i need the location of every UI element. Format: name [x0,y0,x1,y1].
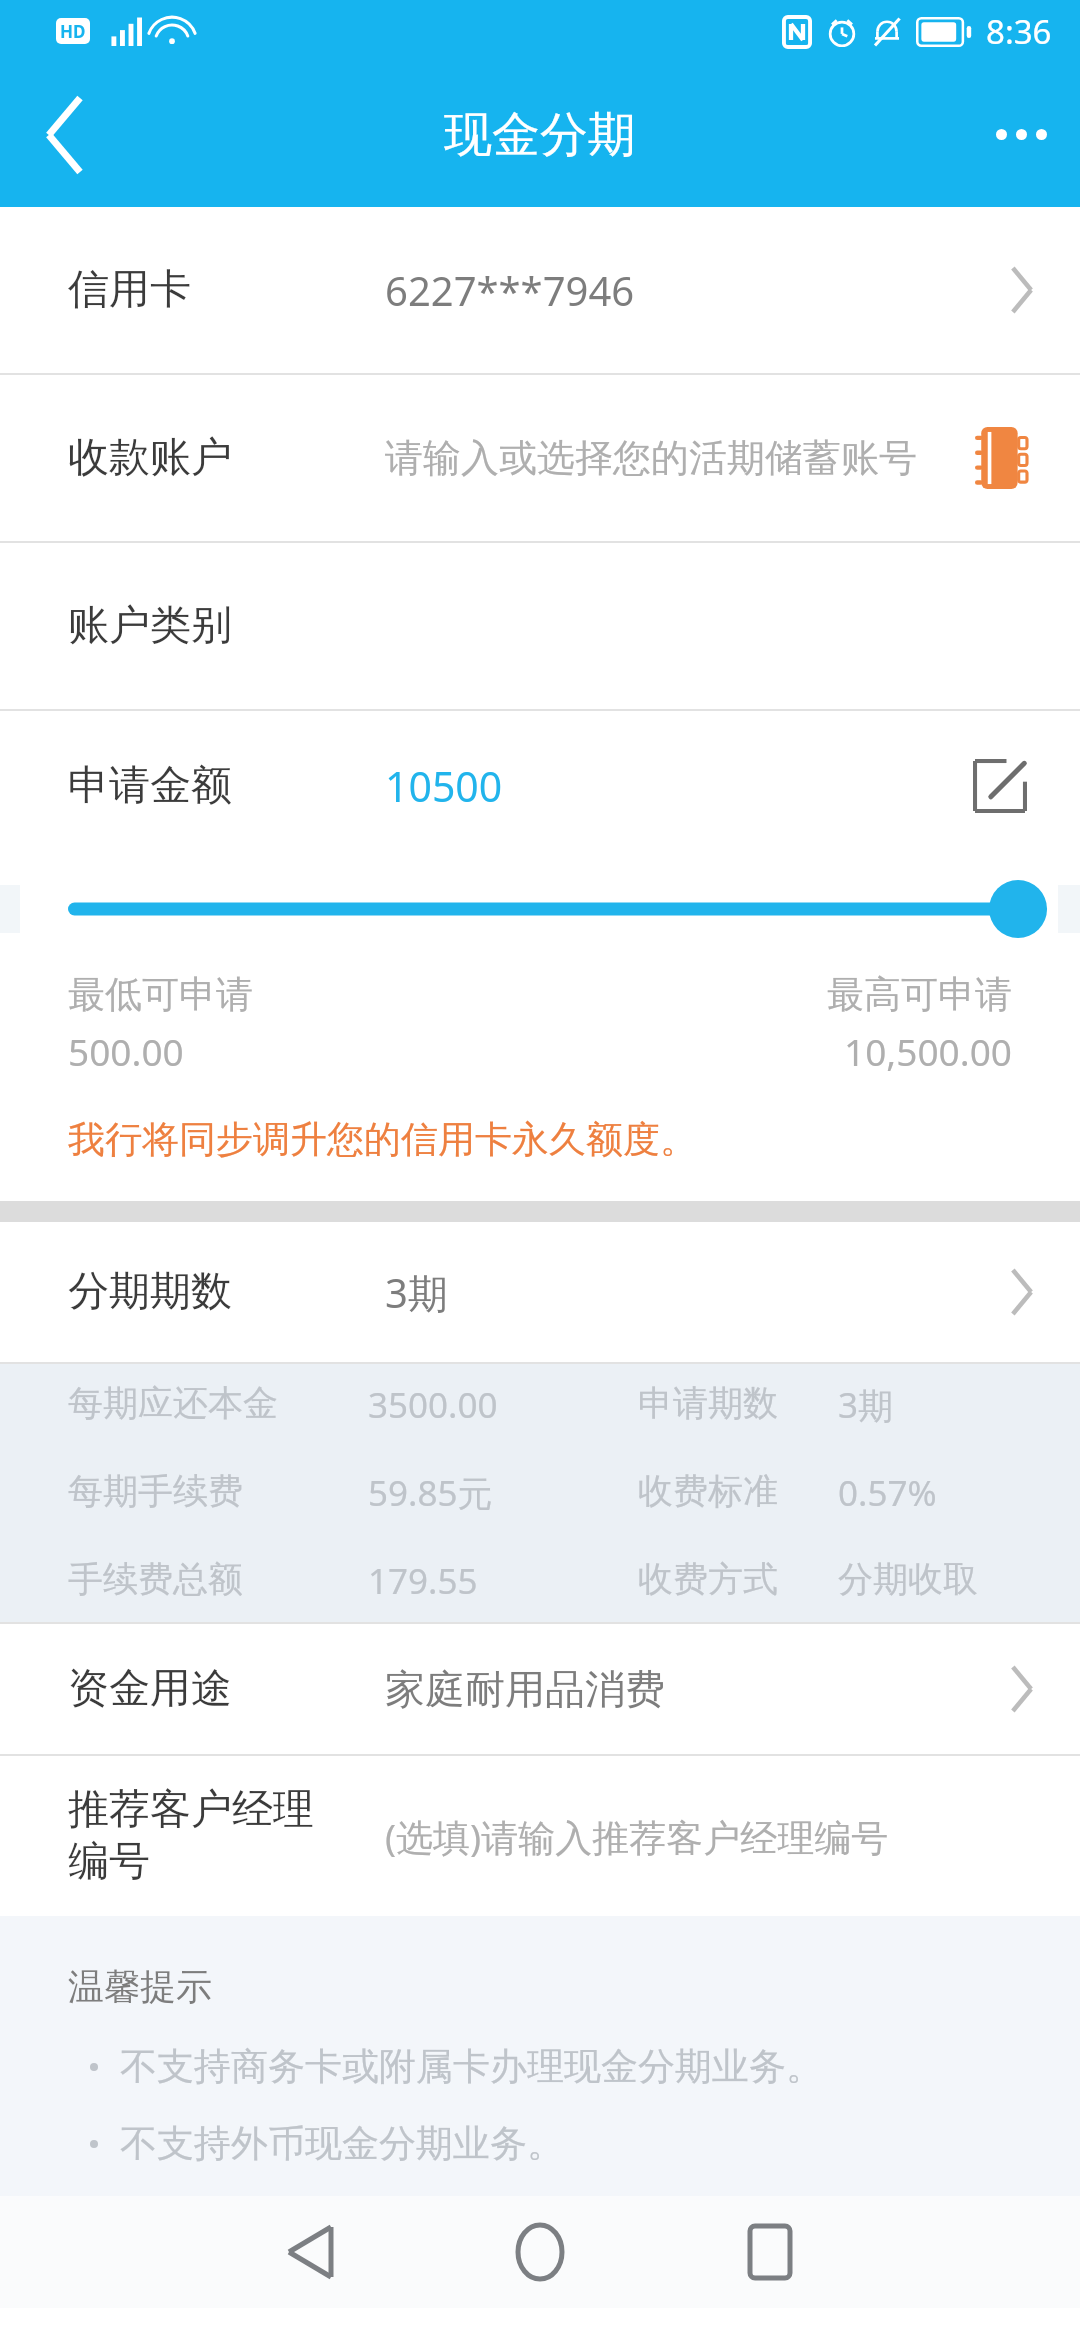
staticText: (选填)请输入推荐客户经理编号 [385,1811,889,1862]
staticText: 家庭耐用品消费 [385,1664,665,1714]
staticText: 申请期数 [638,1381,778,1425]
staticText: 推荐客户经理 [68,1784,314,1836]
staticText: 0.57% [838,1469,937,1517]
staticText: 最高可申请 [827,971,1012,1018]
button[interactable]: Edit amount [962,748,1038,824]
staticText: 信用卡 [68,264,191,316]
staticText: 现金分期 [444,105,636,165]
staticText: 我行将同步调升您的信用卡永久额度。 [68,1116,697,1163]
staticText: 每期手续费 [68,1469,243,1513]
staticText: 10,500.00 [844,1026,1012,1076]
staticText: 请输入或选择您的活期储蓄账号 [385,434,917,482]
staticText: 分期期数 [68,1266,232,1318]
staticText: 分期收取 [838,1557,978,1601]
button[interactable]: 信用卡 [0,207,1080,373]
staticText: 不支持外币现金分期业务。 [120,2120,564,2167]
staticText: 3期 [838,1381,894,1429]
staticText: 账户类别 [68,600,232,652]
staticText: HD [60,20,86,43]
button[interactable]: 推荐客户经理 [0,1756,1080,1916]
staticText: 温馨提示 [68,1964,212,2009]
staticText: 3期 [385,1265,448,1320]
button[interactable]: Back [250,2196,370,2308]
staticText: 6227***7946 [385,263,635,317]
button[interactable]: Home [480,2196,600,2308]
button[interactable]: 资金用途 [0,1624,1080,1754]
staticText: 最低可申请 [68,971,253,1018]
staticText: 资金用途 [68,1663,232,1715]
staticText: 收费标准 [638,1469,778,1513]
staticText: 179.55 [368,1557,478,1605]
staticText: 每期应还本金 [68,1381,278,1425]
button[interactable]: 分期期数 [0,1222,1080,1362]
staticText: 申请金额 [68,760,232,812]
staticText: 收款账户 [68,432,232,484]
staticText: 3500.00 [368,1381,498,1429]
button[interactable]: Recent apps [710,2196,830,2308]
button[interactable]: Amount slider [68,861,1034,957]
button[interactable]: 账户类别 [0,543,1080,709]
staticText: 8:36 [986,9,1052,54]
staticText: 不支持商务卡或附属卡办理现金分期业务。 [120,2043,823,2090]
staticText: 59.85元 [368,1469,493,1517]
button[interactable]: 收款账户 [0,375,1080,541]
staticText: 10500 [385,758,503,814]
staticText: 手续费总额 [68,1557,243,1601]
button[interactable]: More options [962,62,1080,207]
staticText: 收费方式 [638,1557,778,1601]
staticText: 500.00 [68,1026,184,1076]
button[interactable]: Choose account [966,423,1036,493]
button[interactable]: 申请金额 [0,711,1080,861]
staticText: 编号 [68,1836,150,1888]
button[interactable]: Back [0,62,128,207]
